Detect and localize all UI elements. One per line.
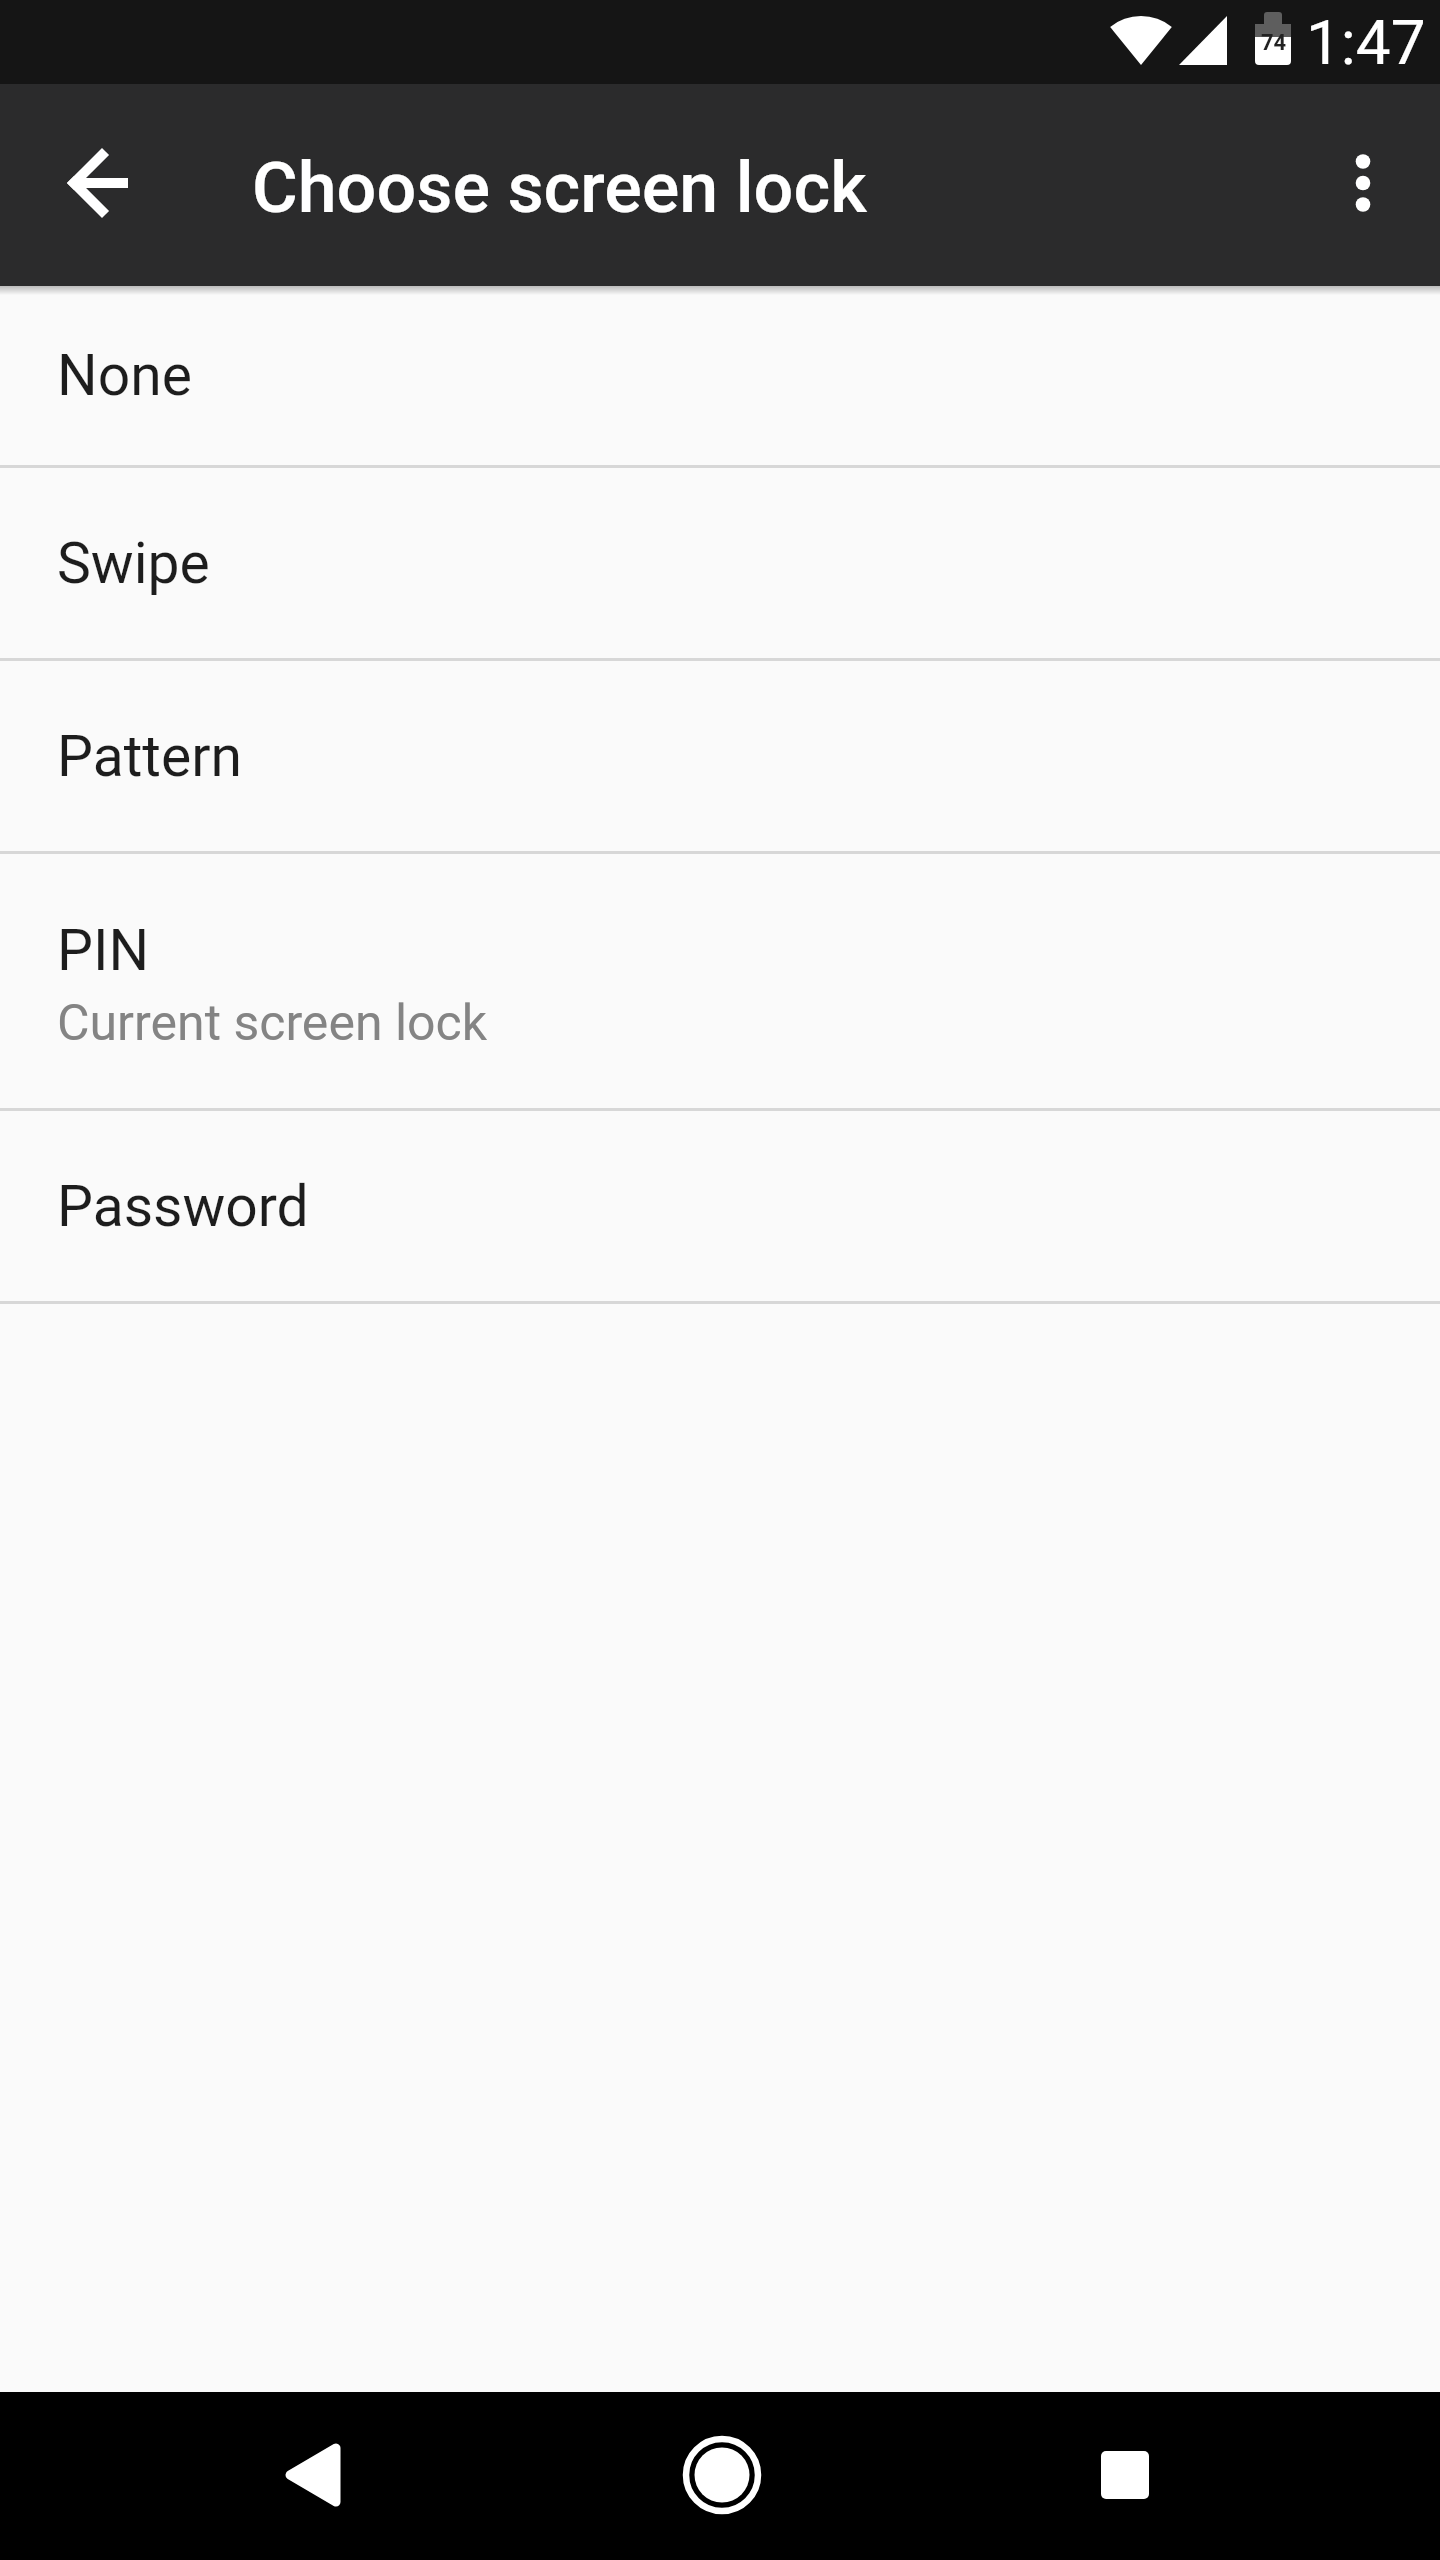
- button[interactable]: [1307, 127, 1419, 239]
- staticText: Current screen lock: [57, 994, 488, 1053]
- staticText: None: [57, 342, 192, 409]
- button[interactable]: None: [0, 286, 1440, 465]
- button[interactable]: PIN: [0, 854, 1440, 1108]
- staticText: Password: [57, 1173, 309, 1240]
- button[interactable]: [652, 2405, 792, 2545]
- staticText: Choose screen lock: [252, 147, 867, 229]
- staticText: 74: [1261, 30, 1287, 56]
- button[interactable]: [245, 2405, 385, 2545]
- button[interactable]: Password: [0, 1111, 1440, 1301]
- button[interactable]: [44, 129, 156, 241]
- button[interactable]: [1055, 2405, 1195, 2545]
- staticText: Swipe: [57, 530, 210, 597]
- staticText: 1:47: [1306, 6, 1426, 79]
- staticText: PIN: [57, 917, 150, 984]
- staticText: Pattern: [57, 723, 242, 790]
- button[interactable]: Pattern: [0, 661, 1440, 851]
- button[interactable]: Swipe: [0, 468, 1440, 658]
